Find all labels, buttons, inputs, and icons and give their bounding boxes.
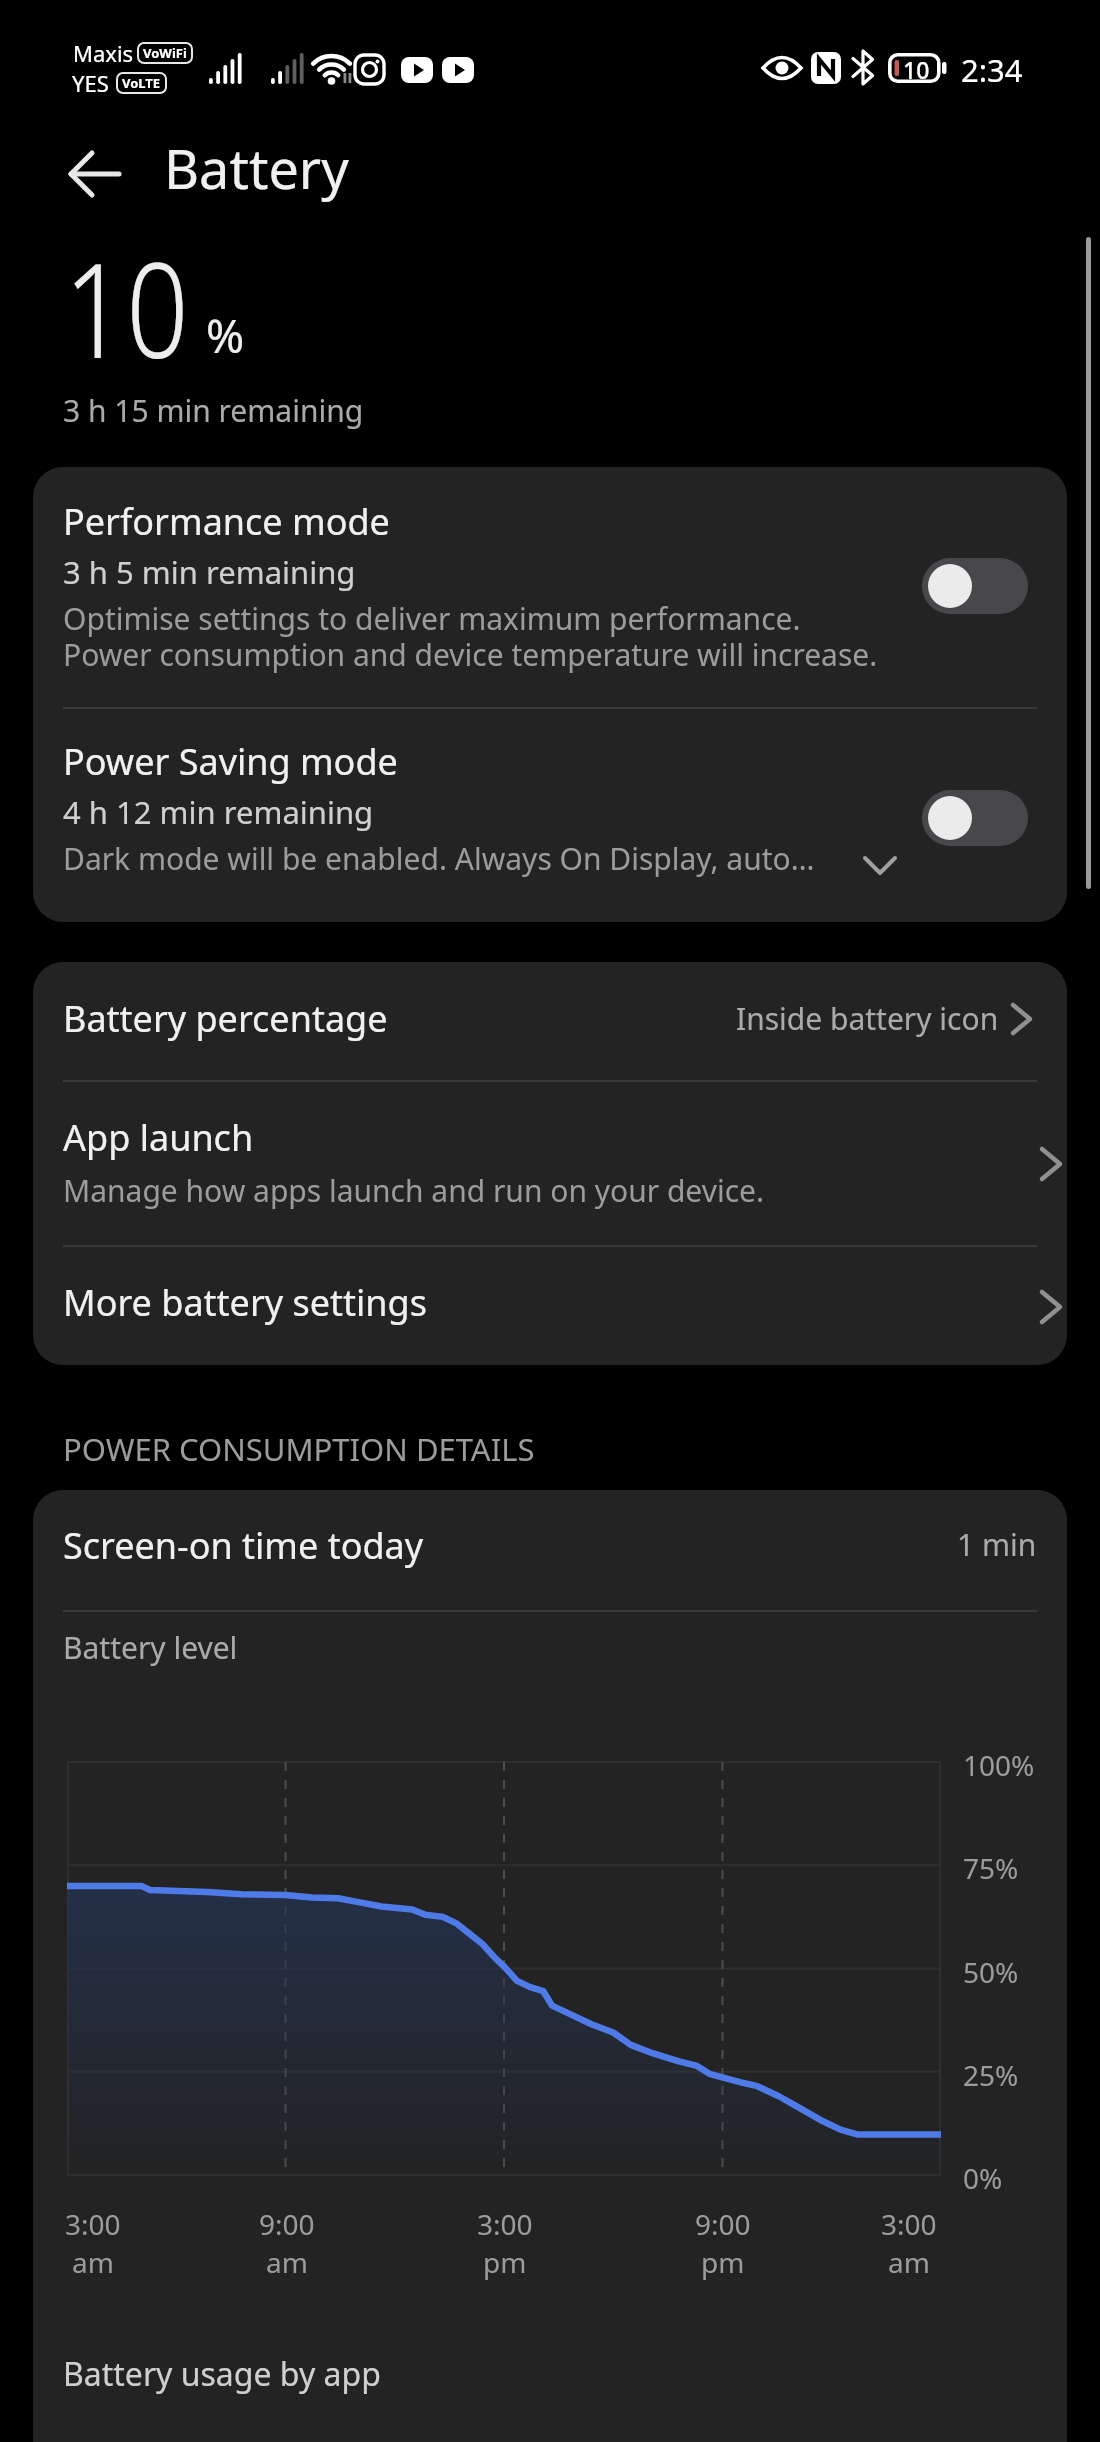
staticText: POWER CONSUMPTION DETAILS (63, 1428, 535, 1470)
staticText: pm (701, 2243, 745, 2281)
staticText: YES (72, 68, 109, 98)
staticText: 2:34 (961, 49, 1023, 91)
staticText: 3:00 (65, 2205, 121, 2243)
staticText: Performance mode (63, 497, 390, 546)
staticText: Battery usage by app (63, 2352, 381, 2396)
staticText: VoLTE (122, 74, 161, 92)
button[interactable] (69, 151, 121, 197)
staticText: pm (483, 2243, 527, 2281)
staticText: 75% (963, 1849, 1019, 1887)
staticText: 1 min (957, 1524, 1037, 1565)
staticText: 0% (963, 2159, 1003, 2197)
staticText: 10 (903, 54, 930, 85)
staticText: Battery (164, 131, 349, 205)
button[interactable] (33, 1081, 1067, 1245)
staticText: 100% (963, 1746, 1035, 1784)
staticText: Screen-on time today (63, 1521, 424, 1570)
staticText: 10 (64, 219, 189, 396)
staticText: 9:00 (259, 2205, 315, 2243)
staticText: 3 h 15 min remaining (63, 390, 364, 431)
button[interactable] (922, 558, 1028, 614)
button[interactable] (922, 790, 1028, 846)
staticText: Manage how apps launch and run on your d… (63, 1170, 765, 1211)
staticText: am (266, 2243, 308, 2281)
staticText: am (72, 2243, 114, 2281)
staticText: 3:00 (477, 2205, 533, 2243)
staticText: % (206, 304, 245, 367)
staticText: 3:00 (881, 2205, 937, 2243)
staticText: Battery level (63, 1627, 238, 1668)
button[interactable] (33, 962, 1067, 1080)
button[interactable] (33, 1490, 1067, 1610)
staticText: More battery settings (63, 1278, 427, 1327)
button[interactable] (33, 467, 1067, 707)
staticText: Optimise settings to deliver maximum per… (63, 598, 878, 675)
staticText: 3 h 5 min remaining (63, 551, 356, 593)
staticText: Battery percentage (63, 994, 388, 1043)
staticText: App launch (63, 1113, 254, 1162)
staticText: Maxis (73, 38, 134, 68)
staticText: 25% (963, 2056, 1019, 2094)
button[interactable] (33, 708, 1067, 922)
staticText: Dark mode will be enabled. Always On Dis… (63, 838, 815, 879)
staticText: 50% (963, 1953, 1019, 1991)
staticText: VoWiFi (143, 44, 187, 62)
staticText: 4 h 12 min remaining (63, 791, 374, 833)
staticText: 9:00 (695, 2205, 751, 2243)
staticText: am (888, 2243, 930, 2281)
staticText: Inside battery icon (736, 998, 999, 1039)
button[interactable] (33, 1246, 1067, 1365)
staticText: Power Saving mode (63, 737, 398, 786)
